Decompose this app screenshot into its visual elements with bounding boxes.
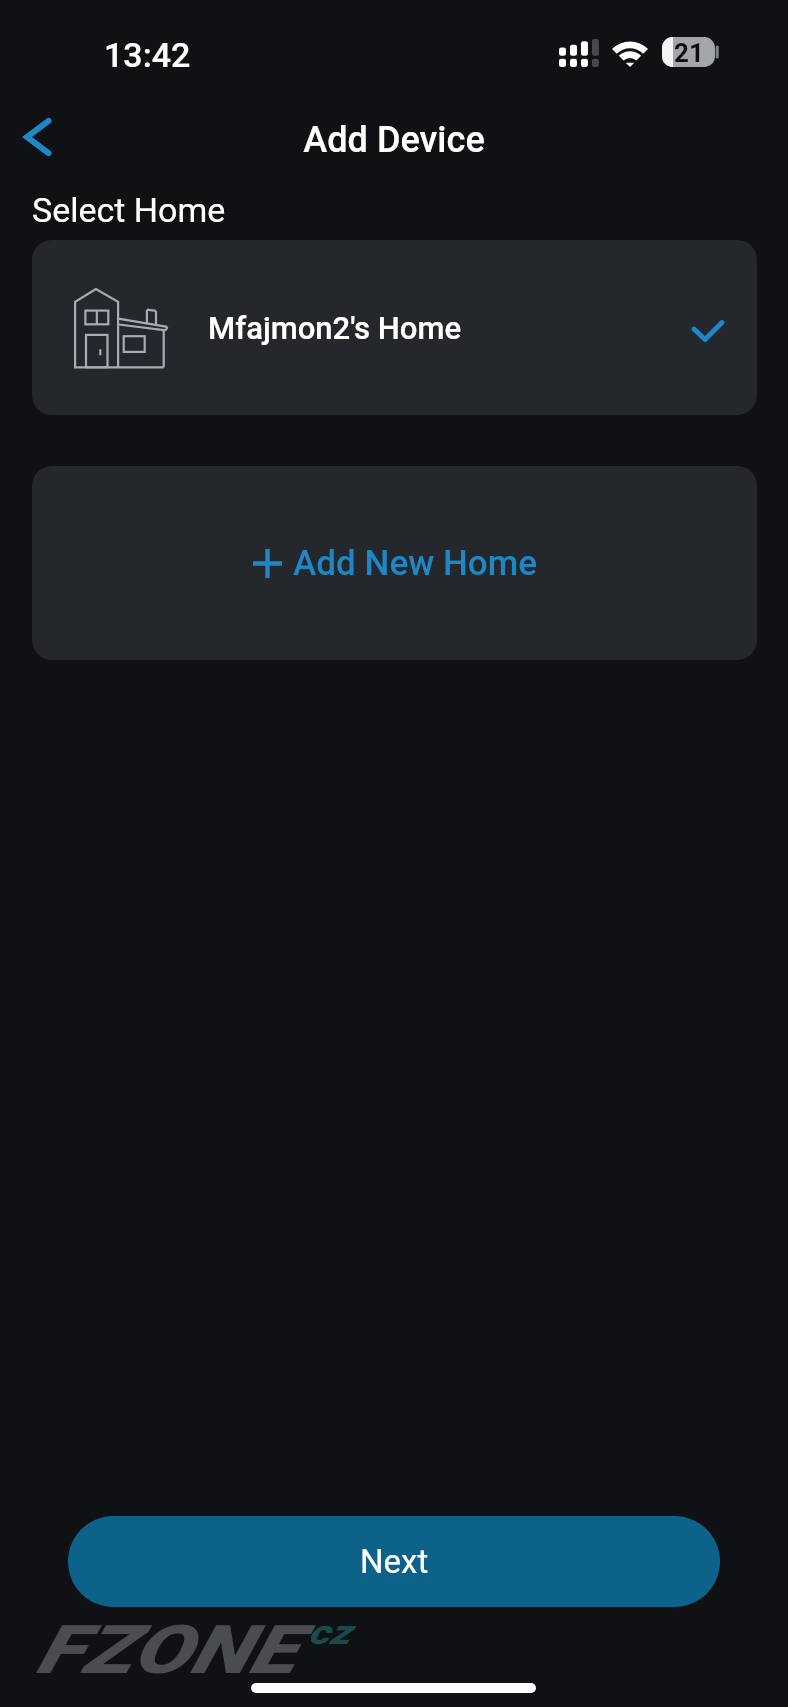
staticText: Add Device [303, 119, 485, 161]
button[interactable]: Mfajmon2's Home [32, 240, 757, 415]
button[interactable]: Back [5, 107, 65, 167]
staticText: Next [360, 1542, 429, 1581]
staticText: cz [308, 1612, 352, 1652]
staticText: 13:42 [104, 35, 191, 75]
button[interactable]: Next [68, 1516, 720, 1607]
staticText: Select Home [32, 190, 226, 230]
staticText: Mfajmon2's Home [208, 310, 462, 346]
button[interactable]: Add New Home [32, 466, 757, 660]
staticText: Add New Home [293, 543, 537, 584]
staticText: 21 [674, 38, 704, 68]
staticText: FZONE [36, 1611, 297, 1689]
